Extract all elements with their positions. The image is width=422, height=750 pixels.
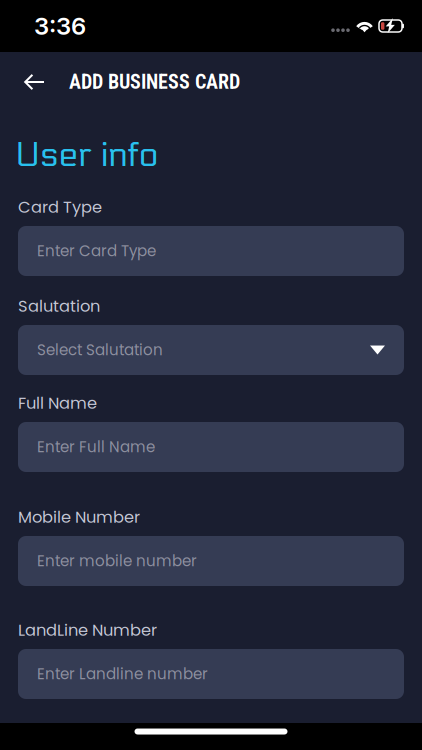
staticText: Card Type [18, 196, 102, 218]
staticText: ADD BUSINESS CARD [69, 70, 240, 94]
staticText: Enter Landline number [37, 663, 208, 685]
staticText: LandLine Number [18, 619, 157, 641]
staticText: Select Salutation [37, 339, 163, 361]
staticText: Full Name [18, 392, 97, 414]
staticText: Mobile Number [18, 506, 140, 528]
button[interactable]: Select Salutation [18, 325, 404, 375]
staticText: Enter mobile number [37, 550, 197, 572]
staticText: User info [15, 134, 158, 175]
button[interactable]: Enter Card Type [18, 226, 404, 276]
button[interactable]: Enter Landline number [18, 649, 404, 699]
staticText: Salutation [18, 295, 100, 317]
button[interactable]: Enter Full Name [18, 422, 404, 472]
staticText: 3:36 [34, 11, 86, 40]
button[interactable]: Back [14, 59, 55, 105]
staticText: Enter Full Name [37, 436, 155, 458]
button[interactable]: Enter mobile number [18, 536, 404, 586]
staticText: Enter Card Type [37, 240, 156, 262]
